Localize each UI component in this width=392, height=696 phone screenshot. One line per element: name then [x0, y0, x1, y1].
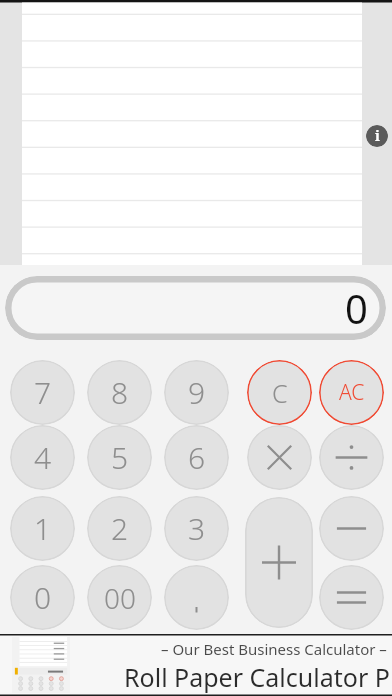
staticText: 2 [111, 508, 129, 549]
staticText: C [272, 376, 288, 410]
staticText: 0 [34, 577, 52, 618]
button[interactable]: 0 [10, 565, 75, 630]
button[interactable]: 2 [87, 496, 152, 561]
button[interactable]: plus [245, 497, 313, 628]
button[interactable]: 6 [164, 425, 229, 490]
button[interactable]: 5 [87, 425, 152, 490]
button[interactable]: equals [319, 565, 384, 630]
staticText: Roll Paper Calculator PRO [124, 660, 392, 694]
staticText: 9 [188, 372, 206, 413]
button[interactable]: decimal point [164, 565, 229, 630]
staticText: 00 [104, 579, 136, 617]
button[interactable]: C [247, 360, 312, 425]
staticText: 7 [34, 372, 52, 413]
staticText: 3 [188, 508, 206, 549]
button[interactable]: minus [319, 496, 384, 561]
staticText: 1 [34, 508, 52, 549]
staticText: AC [339, 378, 365, 407]
button[interactable]: 3 [164, 496, 229, 561]
button[interactable]: 0 [5, 276, 386, 340]
button[interactable]: 00 [87, 565, 152, 630]
staticText: – Our Best Business Calculator – [161, 639, 387, 659]
button[interactable]: AC [319, 360, 384, 425]
button[interactable]: Info [366, 125, 388, 147]
staticText: 5 [111, 437, 129, 478]
button[interactable]: 9 [164, 360, 229, 425]
button[interactable]: 8 [87, 360, 152, 425]
staticText: 0 [345, 281, 368, 335]
button[interactable]: – Our Best Business Calculator – [0, 634, 392, 696]
staticText: 4 [34, 437, 52, 478]
button[interactable]: 1 [10, 496, 75, 561]
button[interactable]: divide [319, 425, 384, 490]
staticText: i [375, 126, 380, 145]
staticText: 6 [188, 437, 206, 478]
button[interactable]: 7 [10, 360, 75, 425]
button[interactable]: multiply [247, 425, 312, 490]
staticText: 8 [111, 372, 129, 413]
button[interactable]: 4 [10, 425, 75, 490]
